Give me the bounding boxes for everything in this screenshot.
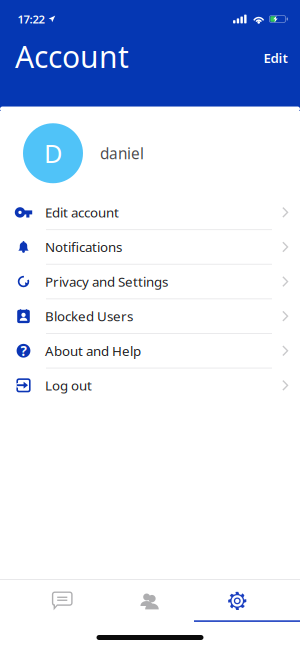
staticText: Edit account <box>45 203 119 221</box>
button[interactable]: Edit <box>254 42 296 77</box>
staticText: daniel <box>100 143 144 164</box>
staticText: Edit <box>263 49 287 67</box>
staticText: Account <box>15 36 129 77</box>
button[interactable]: Notifications <box>0 230 300 265</box>
staticText: ? <box>20 342 26 360</box>
button[interactable]: Chats <box>18 580 106 622</box>
button[interactable]: ? <box>0 334 300 368</box>
button[interactable]: Settings <box>193 580 281 622</box>
button[interactable]: Contacts <box>106 580 193 622</box>
staticText: About and Help <box>45 342 141 360</box>
staticText: Privacy and Settings <box>45 272 168 291</box>
staticText: Log out <box>45 376 92 394</box>
staticText: 17:22 <box>17 11 44 27</box>
button[interactable]: Privacy and Settings <box>0 265 300 299</box>
staticText: Notifications <box>45 238 122 256</box>
staticText: D <box>44 136 62 170</box>
staticText: Blocked Users <box>45 307 133 325</box>
button[interactable]: Edit account <box>0 195 300 230</box>
button[interactable]: Log out <box>0 368 300 403</box>
button[interactable]: Blocked Users <box>0 299 300 334</box>
